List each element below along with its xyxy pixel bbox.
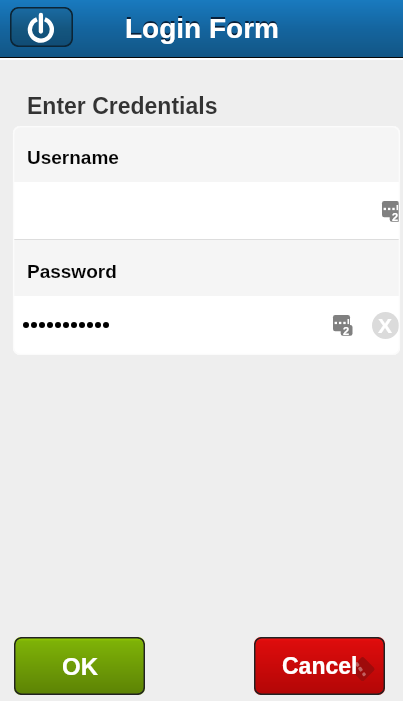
button[interactable]: Clear text [372,312,399,339]
staticText: Login Form [125,11,279,42]
button[interactable]: Change input method [333,315,353,336]
staticText: Username [27,147,119,168]
button[interactable]: OK [14,637,145,695]
button[interactable]: Change input method [382,201,400,222]
staticText: 2 [392,211,399,223]
staticText: Cancel [282,653,358,679]
staticText: X [378,314,393,337]
staticText: Password [27,261,117,282]
staticText: OK [62,653,98,680]
button[interactable]: Cancel [254,637,385,695]
staticText: 2 [343,325,350,337]
staticText: Login Form [125,13,279,44]
button[interactable]: Power [10,7,73,47]
staticText: Enter Credentials [27,93,218,119]
